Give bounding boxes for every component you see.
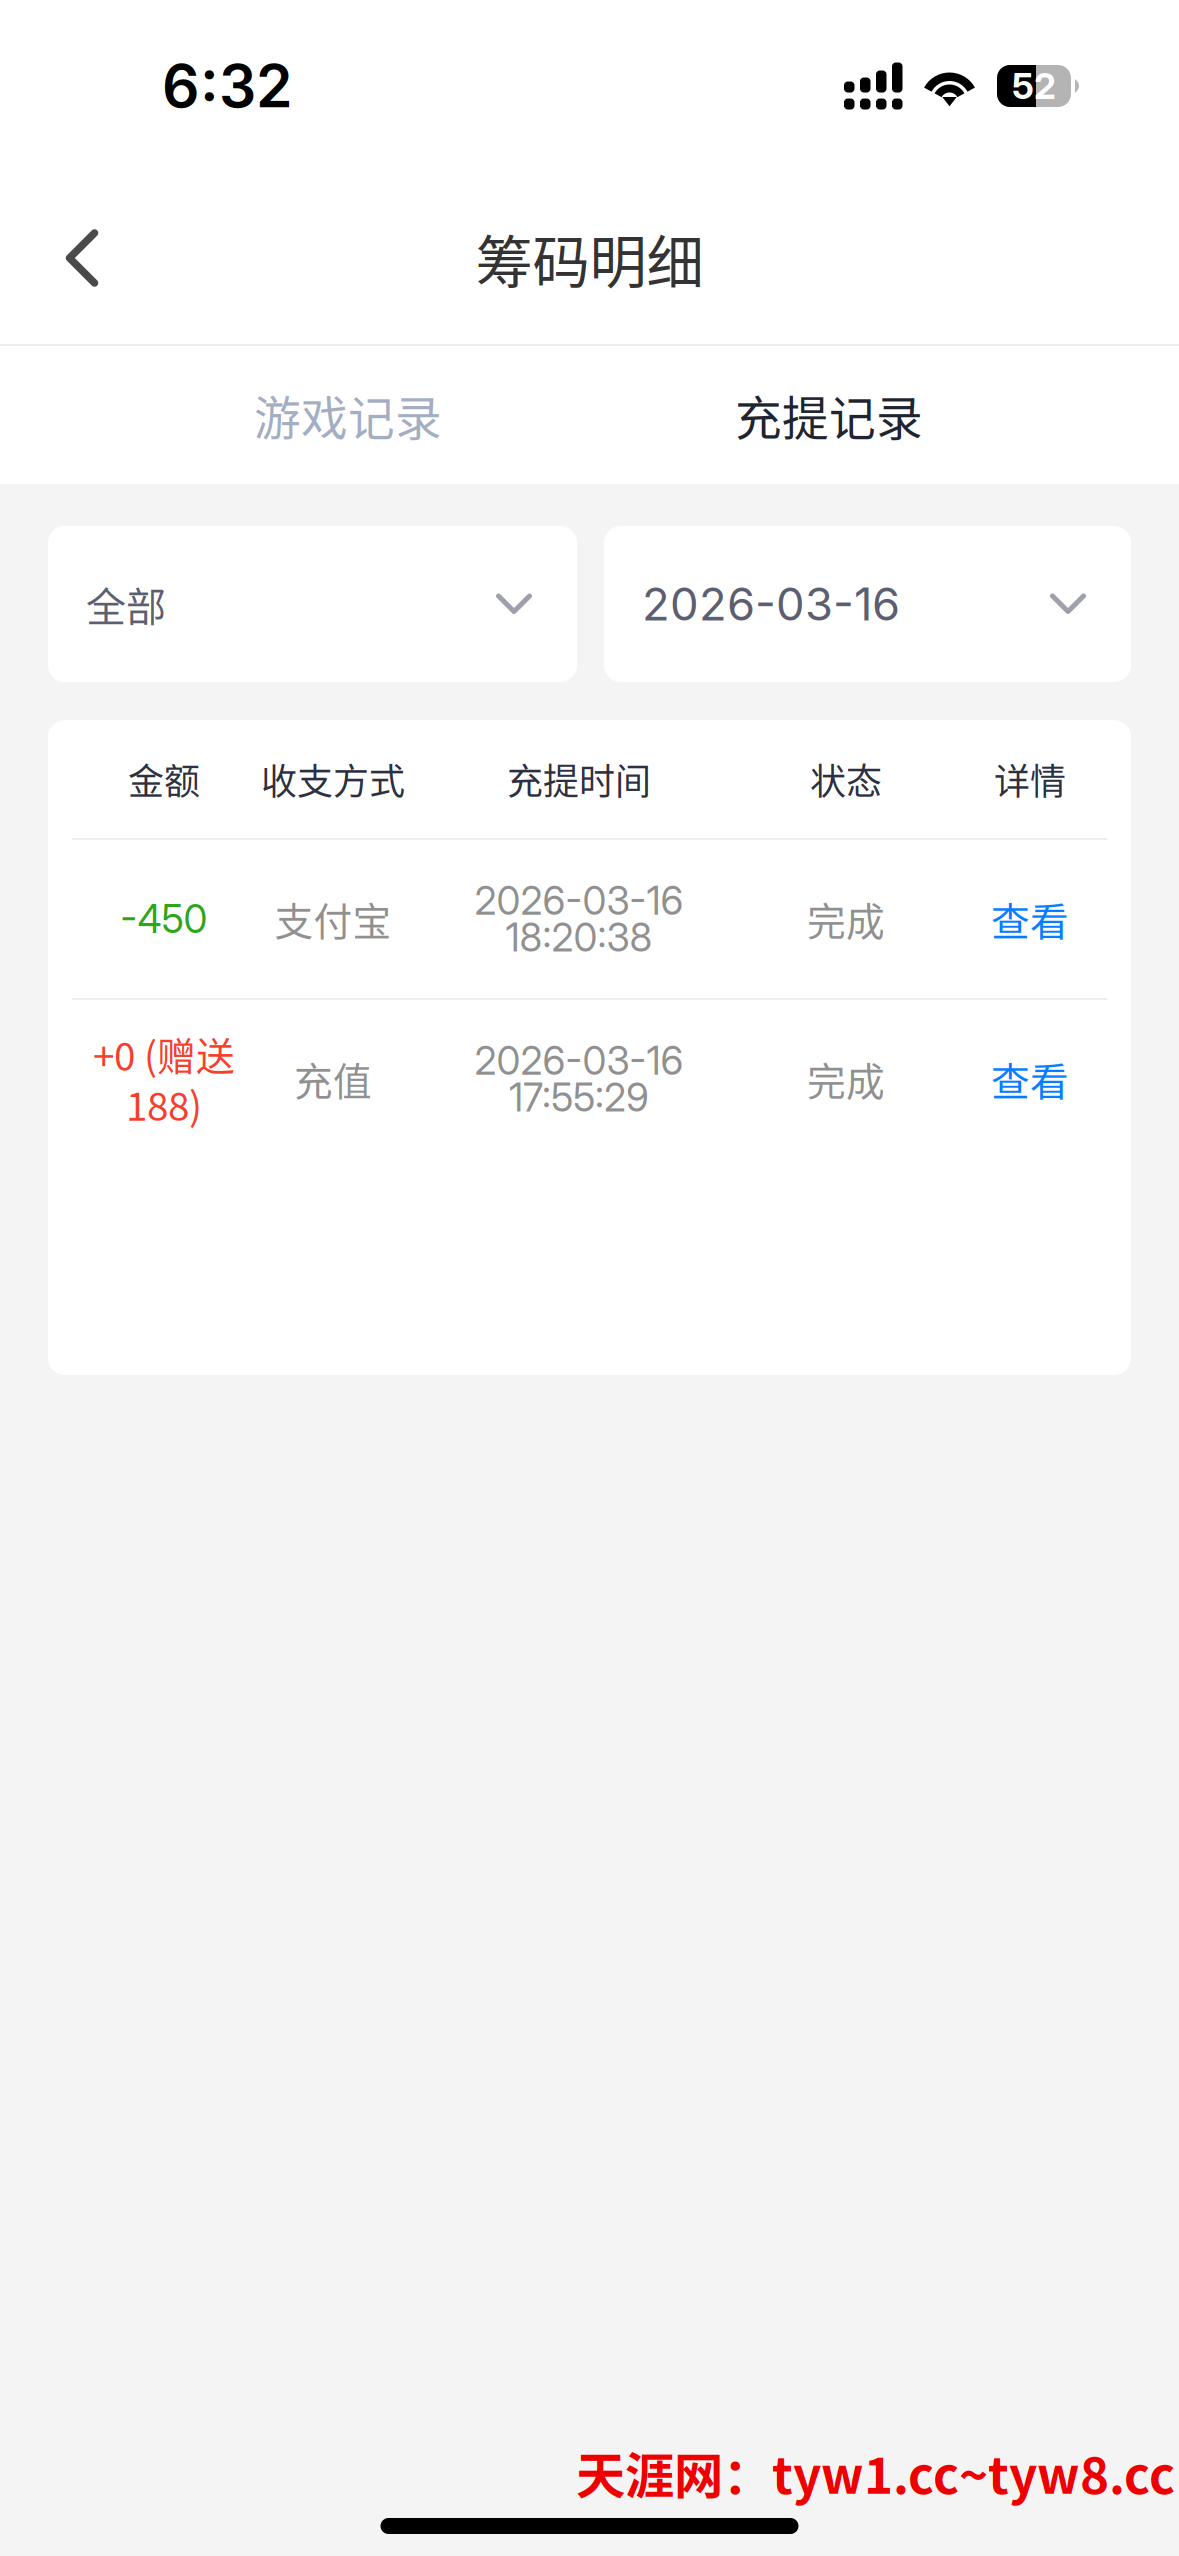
staticText: 状态 <box>810 753 882 805</box>
button[interactable]: 查看 <box>950 840 1110 998</box>
staticText: 充值 <box>294 1051 372 1107</box>
button[interactable]: 2026-03-16 <box>604 526 1131 682</box>
staticText: -450 <box>120 896 207 942</box>
staticText: 完成 <box>807 891 885 947</box>
staticText: 2026-03-16 <box>474 877 683 924</box>
staticText: 详情 <box>994 753 1066 805</box>
staticText: 完成 <box>807 1051 885 1107</box>
button[interactable]: 充提记录 <box>696 346 962 484</box>
staticText: 支付宝 <box>274 891 391 947</box>
staticText: 筹码明细 <box>475 216 703 299</box>
staticText: 2026-03-16 <box>642 577 900 631</box>
staticText: 充提时间 <box>507 753 651 805</box>
button[interactable]: 查看 <box>950 1000 1110 1158</box>
staticText: 6:32 <box>162 50 293 121</box>
staticText: 游戏记录 <box>254 381 442 449</box>
staticText: 18:20:38 <box>505 914 652 961</box>
staticText: 查看 <box>991 1051 1069 1107</box>
staticText: 全部 <box>86 575 166 633</box>
staticText: 查看 <box>991 891 1069 947</box>
staticText: 52 <box>1012 64 1056 108</box>
button[interactable]: 游戏记录 <box>0 346 696 484</box>
button[interactable]: Back <box>18 202 146 314</box>
staticText: 17:55:29 <box>509 1074 649 1121</box>
staticText: 2026-03-16 <box>474 1037 683 1084</box>
button[interactable]: 全部 <box>48 526 577 682</box>
staticText: 天涯网：tyw1.cc~tyw8.cc <box>576 2437 1175 2508</box>
staticText: 188) <box>126 1076 202 1132</box>
staticText: 充提记录 <box>735 381 923 449</box>
staticText: +0 (赠送 <box>93 1026 235 1082</box>
staticText: 金额 <box>128 753 200 805</box>
staticText: 收支方式 <box>261 753 405 805</box>
